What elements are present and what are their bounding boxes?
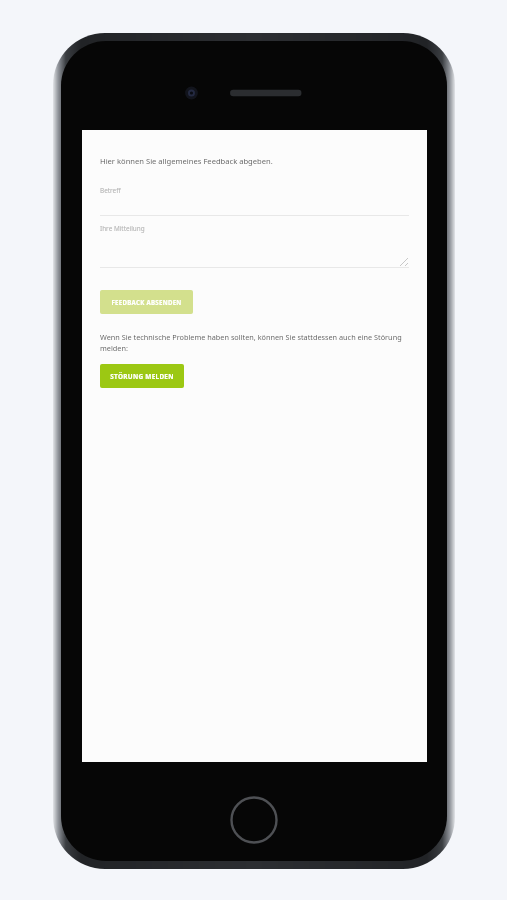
button[interactable]: FEEDBACK ABSENDEN xyxy=(100,290,193,314)
button[interactable]: STÖRUNG MELDEN xyxy=(100,364,184,388)
staticText: Betreff xyxy=(100,186,121,195)
button[interactable]: Betreff xyxy=(100,186,409,216)
staticText: Hier können Sie allgemeines Feedback abg… xyxy=(100,156,273,166)
button[interactable]: Ihre Mitteilung xyxy=(100,224,409,268)
staticText: FEEDBACK ABSENDEN xyxy=(111,298,182,306)
staticText: Ihre Mitteilung xyxy=(100,224,145,233)
staticText: STÖRUNG MELDEN xyxy=(110,372,174,381)
staticText: Wenn Sie technische Probleme haben sollt… xyxy=(100,332,409,353)
button[interactable]: Home xyxy=(229,795,279,845)
